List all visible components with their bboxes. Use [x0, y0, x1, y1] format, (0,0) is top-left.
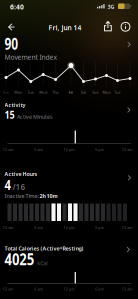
staticText: Activity: [4, 101, 25, 109]
staticText: 15: [4, 108, 16, 122]
staticText: 12 pm: [57, 284, 81, 294]
staticText: 4: [4, 176, 12, 194]
button[interactable]: 90: [4, 33, 131, 61]
staticText: 4025: [4, 248, 40, 270]
button[interactable]: Activity: [4, 101, 131, 122]
staticText: 12 am: [0, 284, 19, 294]
staticText: 12 pm: [57, 144, 81, 155]
staticText: Sat: [78, 87, 89, 98]
staticText: Movement Index: [4, 53, 57, 61]
staticText: 6 am: [29, 144, 47, 155]
staticText: Sun: [88, 87, 102, 98]
staticText: 12 am: [115, 144, 138, 155]
staticText: Sun: [0, 87, 13, 98]
staticText: 12 am: [115, 284, 138, 294]
button[interactable]: Back: [4, 20, 18, 34]
staticText: Active Minutes: [17, 113, 53, 120]
staticText: Wed: [35, 87, 52, 98]
staticText: Tue: [110, 87, 124, 98]
staticText: 12 pm: [57, 222, 81, 233]
button[interactable]: Share: [101, 20, 115, 34]
staticText: 6 am: [29, 284, 47, 294]
staticText: Inactive Time:: [4, 192, 38, 199]
button[interactable]: Info: [118, 20, 132, 34]
staticText: 12 am: [0, 144, 19, 155]
staticText: 12 am: [115, 222, 138, 233]
staticText: Mon: [98, 87, 115, 98]
staticText: Fri: [66, 87, 75, 98]
staticText: 90: [4, 33, 22, 54]
staticText: 12 am: [0, 222, 19, 233]
staticText: Active Hours: [4, 170, 37, 178]
staticText: 2h 10m: [39, 192, 57, 199]
staticText: 6 pm: [90, 284, 109, 294]
staticText: Fri, Jun 14: [48, 23, 81, 32]
staticText: Total Calories (Active+Resting): [4, 245, 83, 252]
button[interactable]: Active Hours: [4, 170, 131, 199]
staticText: 3G: [107, 3, 114, 10]
button[interactable]: Total Calories (Active+Resting): [4, 245, 131, 270]
staticText: Tue: [24, 87, 38, 98]
staticText: Thu: [49, 87, 63, 98]
staticText: 6:40: [10, 2, 24, 11]
staticText: 6 pm: [90, 144, 109, 155]
staticText: 6 pm: [90, 222, 109, 233]
staticText: Mon: [10, 87, 27, 98]
staticText: /16: [12, 182, 25, 192]
staticText: kCal: [37, 260, 47, 267]
staticText: 6 am: [29, 222, 47, 233]
